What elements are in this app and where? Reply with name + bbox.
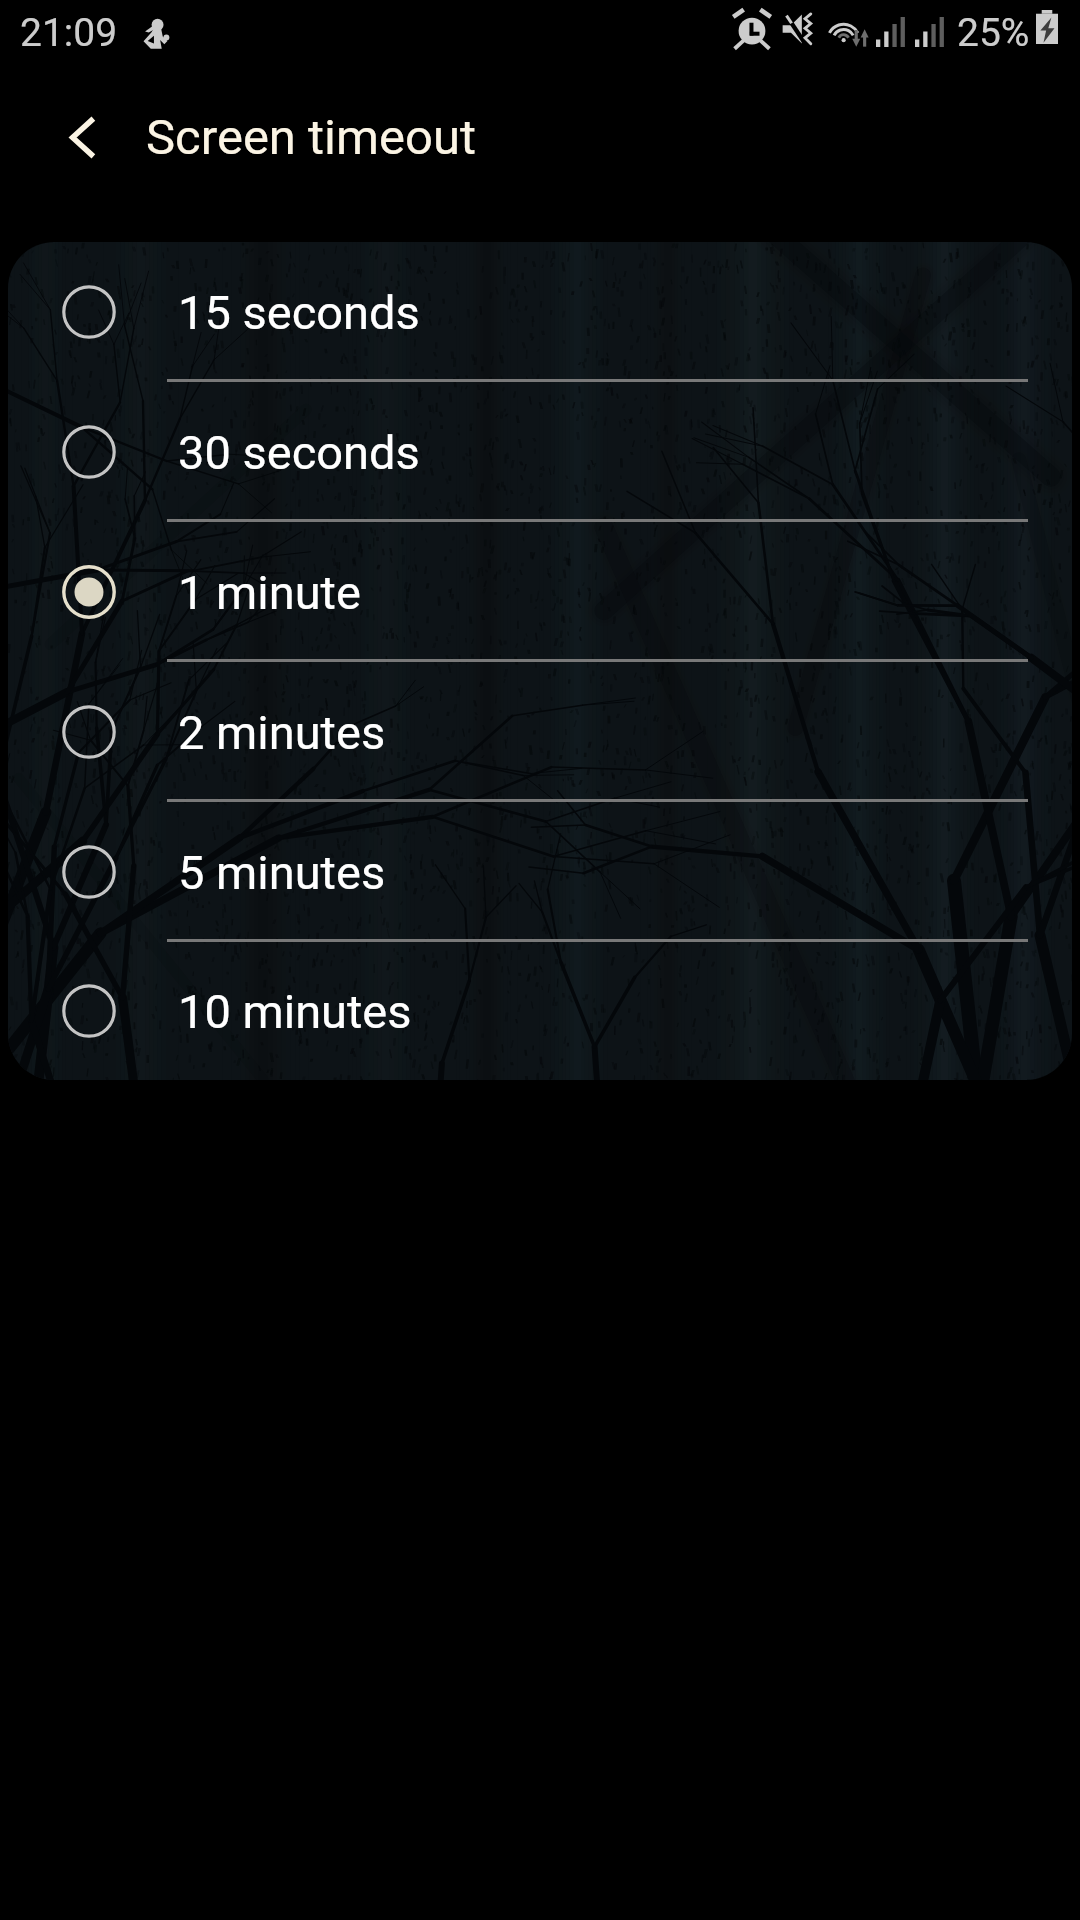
staticText: 5 minutes	[178, 845, 386, 900]
button[interactable]: 2 minutes	[8, 662, 1072, 802]
button[interactable]: Back	[55, 97, 111, 177]
button[interactable]: 5 minutes	[8, 802, 1072, 942]
button[interactable]: 10 minutes	[8, 942, 1072, 1080]
staticText: 15 seconds	[178, 285, 420, 340]
staticText: 2 minutes	[178, 705, 386, 760]
button[interactable]: 1 minute	[8, 522, 1072, 662]
button[interactable]: 15 seconds	[8, 242, 1072, 382]
staticText: Screen timeout	[146, 109, 476, 166]
staticText: 25%	[957, 10, 1030, 56]
staticText: 1 minute	[178, 565, 361, 620]
staticText: 30 seconds	[178, 425, 420, 480]
staticText: 21:09	[20, 10, 118, 56]
button[interactable]: 30 seconds	[8, 382, 1072, 522]
staticText: 10 minutes	[178, 984, 412, 1039]
